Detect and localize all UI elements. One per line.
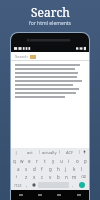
button[interactable]: l bbox=[78, 165, 86, 173]
button[interactable]: k bbox=[70, 165, 78, 173]
button[interactable]: a bbox=[14, 165, 22, 173]
button[interactable]: Search bbox=[79, 182, 85, 188]
button[interactable]: s bbox=[22, 165, 30, 173]
staticText: s bbox=[25, 166, 28, 172]
staticText: q bbox=[13, 158, 16, 164]
staticText: d bbox=[33, 166, 36, 172]
staticText: n bbox=[65, 174, 68, 180]
staticText: z bbox=[25, 174, 28, 180]
button[interactable]: p bbox=[81, 157, 89, 165]
button[interactable]: act bbox=[21, 148, 39, 156]
staticText: i bbox=[68, 158, 70, 164]
staticText: w bbox=[20, 158, 24, 164]
staticText: f bbox=[41, 166, 43, 172]
button[interactable]: d bbox=[30, 165, 38, 173]
button[interactable]: Shift bbox=[11, 173, 22, 181]
button[interactable]: r bbox=[33, 157, 41, 165]
staticText: u bbox=[60, 158, 63, 164]
button[interactable]: c bbox=[38, 173, 46, 181]
staticText: t bbox=[44, 158, 46, 164]
button[interactable]: Voice input bbox=[80, 148, 89, 156]
staticText: b bbox=[57, 174, 60, 180]
staticText: Search bbox=[15, 54, 28, 59]
button[interactable]: Search bbox=[11, 52, 89, 61]
staticText: ACF bbox=[66, 150, 74, 155]
button[interactable]: actually bbox=[40, 148, 59, 156]
button[interactable]: h bbox=[54, 165, 62, 173]
button[interactable]: u bbox=[57, 157, 65, 165]
staticText: | bbox=[15, 150, 18, 155]
staticText: r bbox=[36, 158, 38, 164]
button[interactable]: t bbox=[41, 157, 49, 165]
staticText: actually bbox=[42, 150, 57, 155]
button[interactable]: y bbox=[49, 157, 57, 165]
staticText: o bbox=[76, 158, 79, 164]
staticText: . bbox=[72, 182, 74, 188]
staticText: for html elements bbox=[29, 20, 71, 27]
button[interactable]: , bbox=[24, 181, 30, 189]
button[interactable]: g bbox=[46, 165, 54, 173]
staticText: m bbox=[72, 174, 77, 180]
staticText: ?123 bbox=[14, 183, 22, 188]
staticText: ⇧ bbox=[15, 175, 18, 179]
button[interactable]: o bbox=[73, 157, 81, 165]
button[interactable]: Home bbox=[30, 190, 49, 200]
button[interactable]: Menu bbox=[69, 190, 89, 200]
staticText: a bbox=[17, 166, 20, 172]
staticText: v bbox=[49, 174, 52, 180]
staticText: l bbox=[81, 166, 83, 172]
staticText: act bbox=[27, 150, 33, 155]
staticText: g bbox=[49, 166, 52, 172]
staticText: k bbox=[73, 166, 76, 172]
button[interactable]: Back bbox=[11, 190, 30, 200]
button[interactable]: q bbox=[11, 157, 18, 165]
button[interactable]: v bbox=[46, 173, 54, 181]
button[interactable]: e bbox=[25, 157, 33, 165]
staticText: p bbox=[84, 158, 87, 164]
button[interactable]: . bbox=[70, 181, 76, 189]
staticText: ⌫ bbox=[81, 175, 86, 179]
staticText: h bbox=[57, 166, 60, 172]
staticText: y bbox=[52, 158, 55, 164]
button[interactable]: Symbols bbox=[12, 181, 24, 189]
staticText: j bbox=[65, 166, 67, 172]
button[interactable]: f bbox=[38, 165, 46, 173]
button[interactable]: Emoji bbox=[30, 181, 37, 189]
button[interactable]: z bbox=[22, 173, 30, 181]
button[interactable]: Backspace bbox=[78, 173, 89, 181]
button[interactable]: x bbox=[30, 173, 38, 181]
button[interactable]: b bbox=[54, 173, 62, 181]
button[interactable]: m bbox=[70, 173, 78, 181]
staticText: , bbox=[26, 182, 28, 188]
staticText: c bbox=[41, 174, 44, 180]
button[interactable]: i bbox=[65, 157, 73, 165]
button[interactable]: ACF bbox=[60, 148, 79, 156]
staticText: x bbox=[33, 174, 36, 180]
staticText: e bbox=[28, 158, 31, 164]
staticText: Search bbox=[31, 4, 70, 20]
button[interactable]: j bbox=[62, 165, 70, 173]
button[interactable]: Recents bbox=[49, 190, 69, 200]
button[interactable]: w bbox=[18, 157, 25, 165]
button[interactable]: More suggestions bbox=[11, 148, 21, 156]
button[interactable]: n bbox=[62, 173, 70, 181]
